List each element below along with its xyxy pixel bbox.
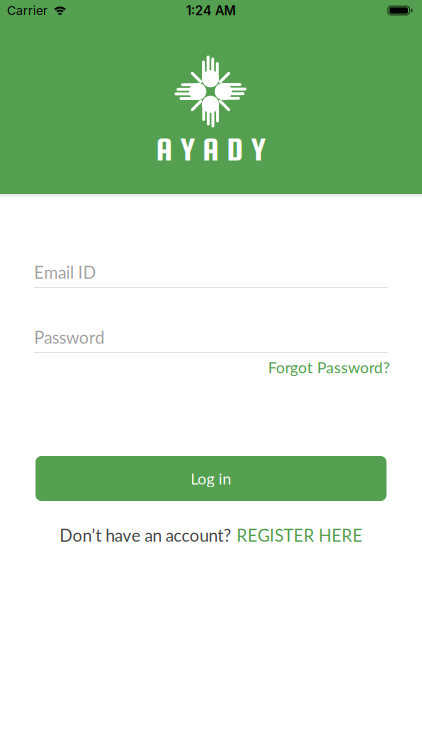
button[interactable]: Forgot Password? bbox=[268, 358, 390, 377]
staticText: Log in bbox=[190, 469, 231, 488]
button[interactable]: Log in bbox=[35, 456, 386, 501]
button[interactable]: REGISTER HERE bbox=[236, 525, 362, 545]
staticText: A bbox=[156, 131, 173, 167]
staticText: A bbox=[202, 131, 219, 167]
button[interactable]: Password bbox=[34, 327, 388, 357]
staticText: REGISTER HERE bbox=[236, 525, 362, 545]
staticText: Y bbox=[180, 131, 195, 167]
button[interactable]: Email ID bbox=[34, 262, 388, 292]
staticText: D bbox=[227, 131, 244, 167]
staticText: 1:24 AM bbox=[186, 3, 236, 18]
staticText: Email ID bbox=[34, 262, 96, 282]
staticText: Don’t have an account? bbox=[59, 525, 231, 545]
staticText: Y bbox=[251, 131, 266, 167]
staticText: Password bbox=[34, 327, 105, 347]
staticText: Forgot Password? bbox=[268, 358, 390, 377]
staticText: Carrier bbox=[7, 3, 48, 18]
